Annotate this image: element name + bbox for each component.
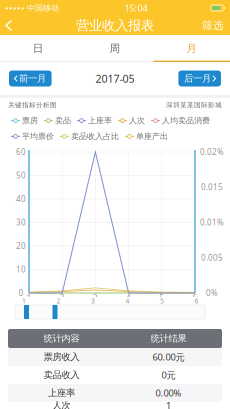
staticText: 2 [56,297,60,305]
staticText: 5 [159,293,164,303]
staticText: 周 [109,42,120,55]
staticText: 0.01% [200,217,224,228]
button[interactable]: 后一月 [178,70,221,86]
staticText: 统计结果 [150,333,186,344]
staticText: 平均票价 [22,131,54,141]
staticText: 单座产出 [136,131,168,141]
staticText: 统计内容 [43,333,79,344]
staticText: 30 [16,217,26,228]
staticText: 1 [22,297,26,305]
staticText: 营业收入报表 [76,17,154,34]
staticText: 月 [186,42,197,55]
staticText: 卖品收入 [43,369,79,381]
staticText: 人次 [129,116,145,125]
staticText: 卖品 [55,116,71,125]
staticText: 0 [18,288,23,298]
staticText: 6 [192,293,197,303]
button[interactable]: 月 [153,35,230,62]
staticText: 后一月 [184,73,211,84]
staticText: 1 [166,399,171,409]
staticText: 2 [60,293,65,303]
staticText: 1 [26,293,31,303]
button[interactable]: 前一月 [9,70,52,86]
staticText: 深圳某某国际影城 [166,101,222,109]
staticText: 0.02% [200,147,224,157]
staticText: 4 [125,297,129,305]
staticText: 40 [16,194,26,204]
staticText: 3 [91,297,95,305]
staticText: 日 [33,42,44,55]
staticText: 前一月 [19,73,46,84]
staticText: 5 [160,297,164,305]
staticText: 10 [16,264,26,275]
staticText: 3 [93,293,98,303]
staticText: 0.015 [201,182,223,192]
staticText: 人次 [52,400,70,409]
staticText: ••••• [5,2,25,14]
staticText: 15:04 [124,2,147,14]
staticText: 6 [194,297,198,305]
staticText: 关键指标分析图 [8,101,57,109]
staticText: 票房 [22,116,38,125]
staticText: 0元 [161,369,175,381]
button[interactable]: 返回 [0,16,23,35]
staticText: 60 [16,147,26,157]
staticText: 0.00% [155,387,181,399]
staticText: 60.00元 [152,351,184,363]
staticText: 卖品收入占比 [71,131,119,141]
staticText: 票房收入 [43,351,79,363]
staticText: 人均卖品消费 [162,116,210,125]
button[interactable]: 日 [0,35,77,62]
staticText: 2017-05 [95,71,134,86]
staticText: 50 [16,170,26,181]
button[interactable]: 周 [77,35,153,62]
button[interactable]: 筛选 [196,16,230,35]
staticText: 0% [206,288,218,298]
staticText: 20 [16,241,26,251]
staticText: 上座率 [88,116,112,125]
staticText: 上座率 [48,387,75,399]
staticText: 0.005 [201,252,223,263]
staticText: 4 [126,293,131,303]
staticText: 中国移动 [25,3,59,13]
staticText: 筛选 [202,19,224,32]
